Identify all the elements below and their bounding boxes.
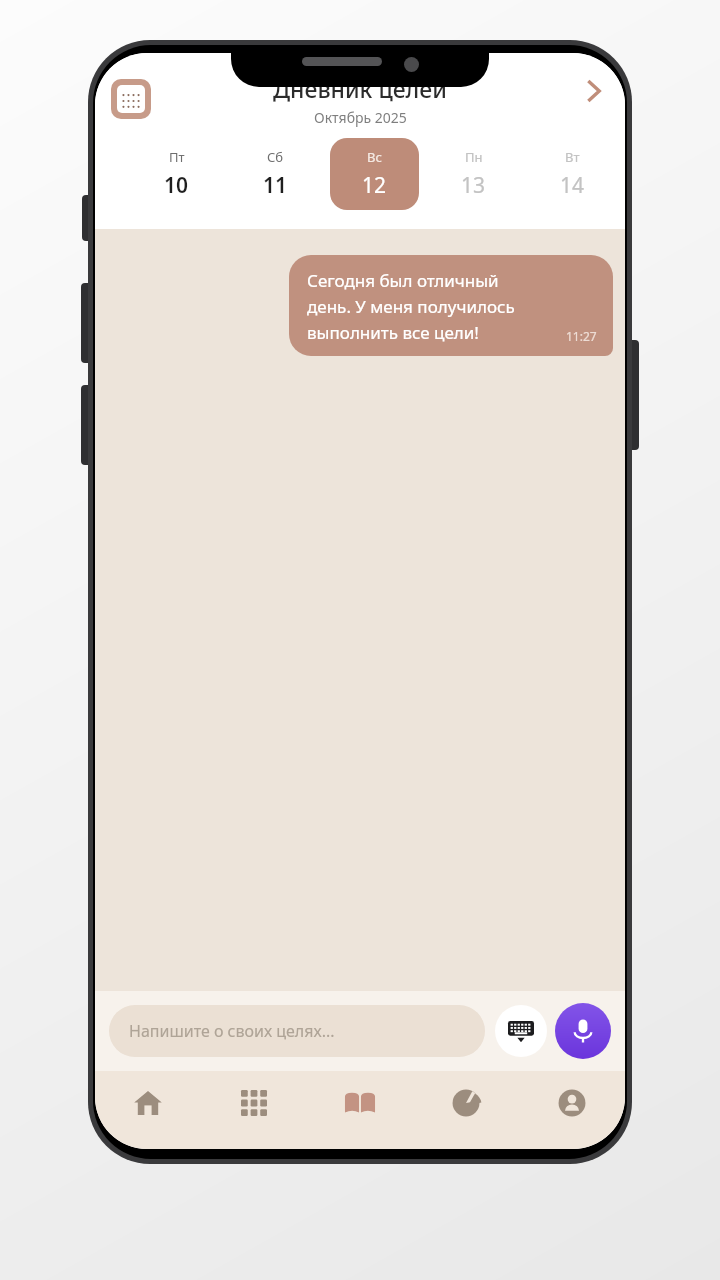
staticText: 11 — [263, 171, 288, 200]
button[interactable]: Сб — [231, 138, 320, 210]
button[interactable]: Profile — [519, 1071, 625, 1135]
button[interactable]: Next — [571, 69, 615, 113]
button[interactable]: Пн — [429, 138, 518, 210]
staticText: день. У меня получилось — [307, 295, 515, 318]
button[interactable]: Keyboard — [495, 1005, 547, 1057]
button[interactable]: Diary — [307, 1071, 413, 1135]
staticText: 10 — [164, 171, 189, 200]
button[interactable]: Пт — [131, 138, 221, 210]
staticText: 14 — [560, 171, 585, 200]
staticText: 11:27 — [566, 328, 597, 344]
staticText: Дневник целей — [273, 73, 447, 104]
staticText: Сегодня был отличный — [307, 269, 499, 292]
staticText: Пт — [169, 148, 185, 166]
staticText: Вт — [565, 148, 580, 166]
staticText: 12 — [362, 171, 387, 200]
button[interactable]: Home — [95, 1071, 201, 1135]
button[interactable]: Voice input — [555, 1003, 611, 1059]
button[interactable]: Вс — [330, 138, 419, 210]
button[interactable]: Напишите о своих целях... — [109, 1005, 485, 1057]
button[interactable]: Вт — [528, 138, 617, 210]
staticText: Пн — [465, 148, 483, 166]
staticText: выполнить все цели! — [307, 321, 479, 344]
button[interactable]: Calendar — [111, 79, 151, 119]
button[interactable]: Statistics — [413, 1071, 519, 1135]
staticText: Октябрь 2025 — [314, 108, 407, 127]
staticText: Напишите о своих целях... — [129, 1020, 335, 1042]
staticText: Сб — [267, 148, 284, 166]
button[interactable]: Apps — [201, 1071, 307, 1135]
staticText: Вс — [367, 148, 382, 166]
staticText: 13 — [461, 171, 486, 200]
button[interactable]: Сегодня был отличный — [289, 255, 613, 356]
